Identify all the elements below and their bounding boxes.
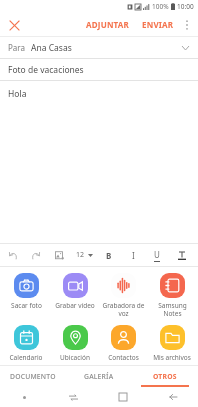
button[interactable]: Contactos (100, 324, 146, 363)
button[interactable]: Cerrar (4, 15, 24, 35)
staticText: Para (8, 42, 25, 53)
staticText: Sacar foto (11, 301, 42, 310)
button[interactable]: Mis archivos (149, 324, 195, 363)
button[interactable]: Sacar foto (3, 272, 49, 311)
button[interactable]: Samsung Notes (149, 272, 195, 319)
button[interactable]: Cursiva (126, 248, 140, 262)
staticText: Foto de vacaciones (8, 64, 84, 76)
staticText: 10:00 (177, 2, 194, 11)
button[interactable]: Ubicación (52, 324, 98, 363)
button[interactable]: DOCUMENTO (0, 366, 66, 387)
button[interactable]: Foto de vacaciones (0, 59, 198, 80)
button[interactable]: Calendario (3, 324, 49, 363)
button[interactable]: Más opciones (178, 16, 196, 34)
staticText: OTROS (153, 372, 177, 381)
button[interactable]: Deshacer (6, 248, 21, 263)
button[interactable]: Recientes (49, 387, 98, 407)
staticText: Ana Casas (31, 42, 72, 54)
staticText: U (154, 249, 160, 260)
button[interactable]: Tamaño de fuente (74, 247, 95, 263)
staticText: 100% (152, 2, 169, 11)
button[interactable]: Hola (0, 81, 198, 243)
staticText: Samsung Notes (158, 301, 187, 318)
staticText: Contactos (108, 353, 139, 362)
staticText: B (106, 250, 112, 261)
button[interactable]: OTROS (132, 366, 198, 387)
button[interactable]: Grabadora de voz (100, 272, 146, 319)
button[interactable]: Grabar vídeo (52, 272, 98, 311)
staticText: Mis archivos (153, 353, 191, 362)
button[interactable]: Negrita (102, 248, 116, 262)
button[interactable]: Para (0, 37, 198, 58)
button[interactable]: Expandir destinatarios (178, 41, 192, 55)
button[interactable]: Inicio (98, 387, 148, 407)
button[interactable]: Atrás (148, 387, 198, 407)
button[interactable]: ENVIAR (138, 15, 178, 34)
button[interactable]: Color de texto (174, 247, 190, 263)
staticText: ENVIAR (142, 19, 174, 30)
staticText: Calendario (9, 353, 43, 362)
button[interactable]: Rehacer (28, 248, 43, 263)
staticText: ADJUNTAR (86, 19, 130, 30)
staticText: DOCUMENTO (10, 372, 56, 381)
button[interactable]: Subrayado (150, 248, 164, 262)
staticText: I (132, 250, 135, 261)
staticText: Grabadora de voz (102, 301, 145, 318)
button[interactable]: GALERÍA (66, 366, 132, 387)
staticText: Grabar vídeo (55, 301, 95, 310)
button[interactable]: Insertar imagen (52, 248, 67, 263)
staticText: Ubicación (60, 353, 90, 362)
button[interactable]: Ocultar teclado (0, 387, 49, 407)
staticText: GALERÍA (84, 372, 114, 381)
button[interactable]: ADJUNTAR (82, 15, 134, 34)
staticText: 12 (76, 250, 85, 260)
staticText: Hola (8, 88, 27, 100)
